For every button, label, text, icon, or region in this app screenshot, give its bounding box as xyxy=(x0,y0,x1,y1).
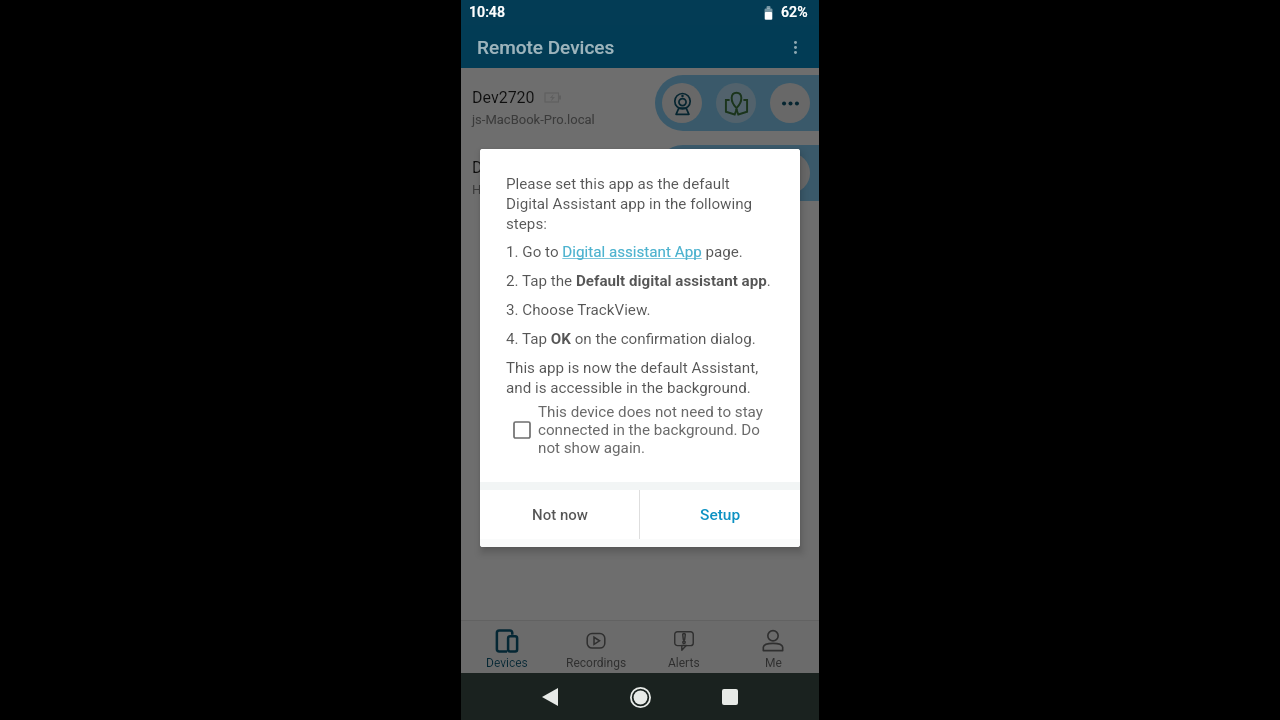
staticText: This app is now the default Assistant, a… xyxy=(506,359,771,396)
staticText: 4. Tap OK on the confirmation dialog. xyxy=(506,330,756,348)
staticText: Please set this app as the default Digit… xyxy=(506,175,771,232)
button[interactable]: Map xyxy=(716,83,756,123)
staticText: Alerts xyxy=(668,656,700,670)
button[interactable]: Me xyxy=(730,620,816,673)
staticText: Setup xyxy=(700,506,741,524)
staticText: Dev1001 xyxy=(472,158,535,177)
button[interactable]: More options xyxy=(777,29,813,65)
staticText: Dev2720 xyxy=(472,88,535,107)
staticText: Not now xyxy=(532,506,588,524)
button[interactable]: This device does not need to stay connec… xyxy=(506,403,771,457)
staticText: js-MacBook-Pro.local xyxy=(472,112,595,127)
staticText: This device does not need to stay connec… xyxy=(538,403,767,457)
button[interactable]: More actions xyxy=(770,153,810,193)
button[interactable]: Recordings xyxy=(553,620,639,673)
button[interactable]: Camera xyxy=(662,83,702,123)
staticText: Me xyxy=(765,656,782,670)
staticText: 2. Tap the Default digital assistant app… xyxy=(506,272,771,290)
button[interactable]: Alerts xyxy=(641,620,727,673)
button[interactable]: Dev1001 xyxy=(461,138,819,208)
button[interactable]: Not now xyxy=(480,490,639,539)
staticText: Recordings xyxy=(566,656,627,670)
staticText: 10:48 xyxy=(469,4,505,21)
staticText: Remote Devices xyxy=(477,36,615,58)
button[interactable]: Home xyxy=(623,680,657,714)
staticText: Hostname.local xyxy=(472,182,564,197)
button[interactable]: Back xyxy=(533,680,567,714)
button[interactable]: Recent apps xyxy=(713,680,747,714)
button[interactable]: Dev2720 xyxy=(461,68,819,138)
staticText: Devices xyxy=(486,656,528,670)
staticText: 62% xyxy=(781,4,808,21)
button[interactable]: Devices xyxy=(464,620,550,673)
button[interactable]: Setup xyxy=(640,490,800,539)
staticText: 3. Choose TrackView. xyxy=(506,301,651,319)
button[interactable]: More actions xyxy=(770,83,810,123)
button[interactable]: Map xyxy=(716,153,756,193)
staticText: 1. Go to Digital assistant App page. xyxy=(506,243,743,261)
button[interactable]: Camera xyxy=(662,153,702,193)
